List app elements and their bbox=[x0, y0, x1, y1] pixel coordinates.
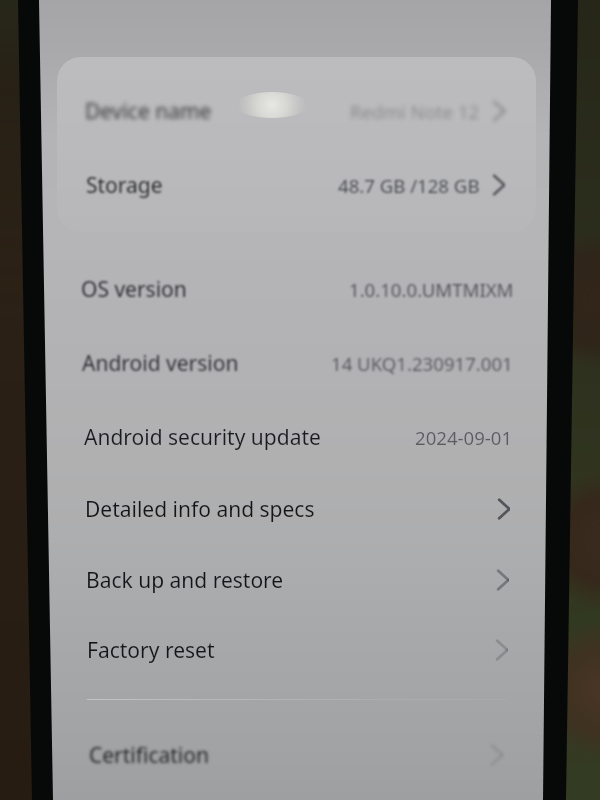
button[interactable]: Factory reset bbox=[87, 614, 508, 686]
other: Open bbox=[493, 175, 505, 195]
staticText: 1.0.10.0.UMTMIXM bbox=[349, 277, 514, 302]
staticText: Device name bbox=[85, 97, 212, 126]
other: Open bbox=[498, 499, 510, 519]
button[interactable]: OS version bbox=[81, 253, 514, 325]
staticText: Redmi Note 12 bbox=[350, 99, 480, 124]
staticText: Detailed info and specs bbox=[85, 495, 315, 524]
button[interactable]: Back up and restore bbox=[86, 544, 509, 616]
button[interactable]: Android security update bbox=[84, 401, 513, 473]
staticText: 2024-09-01 bbox=[415, 425, 513, 450]
staticText: 14 UKQ1.230917.001 bbox=[331, 351, 513, 376]
other: Open bbox=[493, 101, 505, 121]
button[interactable]: Detailed info and specs bbox=[85, 473, 510, 545]
other: Open bbox=[491, 745, 503, 765]
button[interactable]: Device name bbox=[85, 75, 505, 147]
staticText: Android security update bbox=[84, 423, 321, 452]
staticText: Certification bbox=[89, 741, 209, 770]
button[interactable]: Storage bbox=[86, 149, 505, 221]
staticText: Back up and restore bbox=[86, 566, 284, 595]
staticText: OS version bbox=[81, 275, 187, 304]
button[interactable]: Certification bbox=[89, 719, 503, 791]
other: Open bbox=[497, 570, 509, 590]
staticText: Storage bbox=[86, 171, 163, 200]
staticText: Android version bbox=[82, 349, 239, 378]
staticText: 48.7 GB /128 GB bbox=[338, 173, 480, 198]
staticText: Factory reset bbox=[87, 636, 215, 665]
other: Open bbox=[496, 640, 508, 660]
button[interactable]: Android version bbox=[82, 327, 513, 399]
